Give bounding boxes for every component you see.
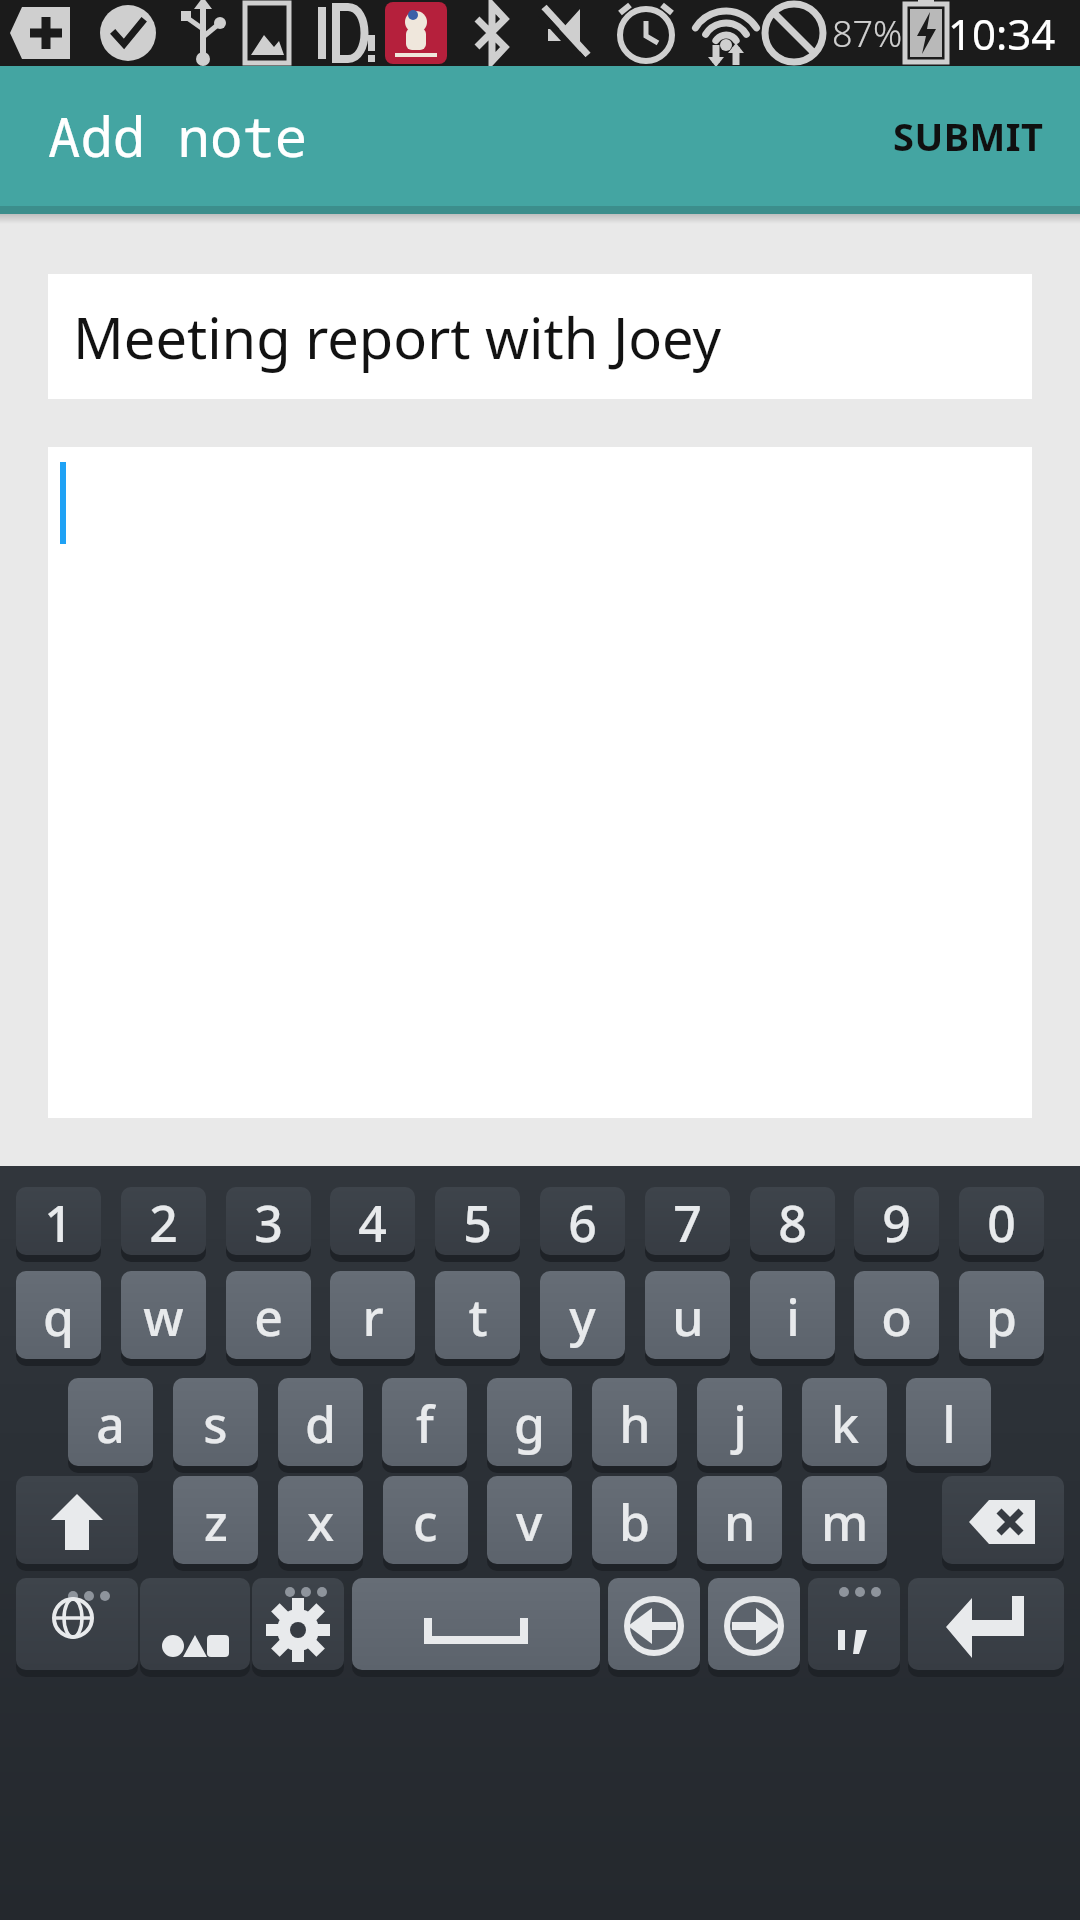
staticText: c (413, 1488, 438, 1556)
button[interactable]: l (906, 1378, 991, 1470)
button[interactable]: d (278, 1378, 363, 1470)
staticText: 6 (568, 1189, 597, 1257)
staticText: 4 (358, 1189, 387, 1257)
button[interactable]: t (435, 1271, 520, 1363)
button[interactable]: Shift (16, 1476, 138, 1568)
button[interactable]: j (697, 1378, 782, 1470)
staticText: w (143, 1283, 184, 1351)
button[interactable]: c (383, 1476, 468, 1568)
button[interactable]: 2 (121, 1187, 206, 1259)
staticText: i (786, 1283, 800, 1351)
staticText: b (619, 1488, 650, 1556)
staticText: r (362, 1283, 384, 1351)
button[interactable]: Meeting report with Joey (48, 274, 1032, 399)
staticText: o (881, 1283, 912, 1351)
staticText: s (203, 1390, 228, 1458)
staticText: n (724, 1488, 756, 1556)
button[interactable]: Keyboard settings (252, 1578, 344, 1674)
button[interactable]: h (592, 1378, 677, 1470)
button[interactable]: y (540, 1271, 625, 1363)
button[interactable]: s (173, 1378, 258, 1470)
staticText: 0 (987, 1189, 1016, 1257)
staticText: f (416, 1390, 434, 1458)
button[interactable]: Punctuation (808, 1578, 900, 1674)
button[interactable]: k (802, 1378, 887, 1470)
button[interactable]: w (121, 1271, 206, 1363)
button[interactable]: 0 (959, 1187, 1044, 1259)
button[interactable]: r (330, 1271, 415, 1363)
staticText: Meeting report with Joey (73, 299, 722, 375)
button[interactable]: Numbers and symbols (140, 1578, 250, 1674)
staticText: j (733, 1390, 747, 1458)
button[interactable]: p (959, 1271, 1044, 1363)
button[interactable]: Move cursor left (608, 1578, 700, 1674)
button[interactable]: Enter (908, 1578, 1064, 1674)
staticText: a (96, 1390, 125, 1458)
staticText: 87% (832, 9, 903, 58)
staticText: 9 (882, 1189, 911, 1257)
button[interactable]: Backspace (942, 1476, 1064, 1568)
button[interactable]: e (226, 1271, 311, 1363)
staticText: Add note (48, 99, 308, 173)
staticText: 10:34 (948, 5, 1056, 62)
button[interactable]: Move cursor right (708, 1578, 800, 1674)
staticText: k (831, 1390, 859, 1458)
staticText: 2 (149, 1189, 178, 1257)
button[interactable]: f (382, 1378, 467, 1470)
staticText: e (254, 1283, 283, 1351)
button[interactable]: 8 (750, 1187, 835, 1259)
button[interactable]: q (16, 1271, 101, 1363)
staticText: d (305, 1390, 336, 1458)
button[interactable]: a (68, 1378, 153, 1470)
button[interactable]: b (592, 1476, 677, 1568)
staticText: q (43, 1283, 74, 1351)
button[interactable]: 1 (16, 1187, 101, 1259)
staticText: 5 (463, 1189, 492, 1257)
staticText: u (672, 1283, 704, 1351)
staticText: t (468, 1283, 488, 1351)
staticText: 3 (254, 1189, 283, 1257)
button[interactable]: 5 (435, 1187, 520, 1259)
staticText: v (516, 1488, 543, 1556)
button[interactable]: Switch language (16, 1578, 138, 1674)
button[interactable]: 4 (330, 1187, 415, 1259)
staticText: l (942, 1390, 956, 1458)
button[interactable]: 9 (854, 1187, 939, 1259)
button[interactable]: 6 (540, 1187, 625, 1259)
staticText: x (307, 1488, 335, 1556)
button[interactable]: i (750, 1271, 835, 1363)
staticText: y (569, 1283, 596, 1351)
staticText: 7 (673, 1189, 702, 1257)
staticText: z (204, 1488, 228, 1556)
staticText: h (619, 1390, 651, 1458)
staticText: SUBMIT (893, 110, 1044, 162)
button[interactable]: u (645, 1271, 730, 1363)
button[interactable]: 7 (645, 1187, 730, 1259)
staticText: m (821, 1488, 869, 1556)
button[interactable]: g (487, 1378, 572, 1470)
button[interactable] (48, 447, 1032, 1118)
button[interactable]: Space (352, 1578, 600, 1674)
button[interactable]: SUBMIT (857, 84, 1080, 188)
button[interactable]: o (854, 1271, 939, 1363)
button[interactable]: z (173, 1476, 258, 1568)
staticText: 1 (44, 1189, 73, 1257)
staticText: 8 (778, 1189, 807, 1257)
button[interactable]: m (802, 1476, 887, 1568)
button[interactable]: 3 (226, 1187, 311, 1259)
staticText: p (986, 1283, 1017, 1351)
staticText: g (514, 1390, 545, 1458)
button[interactable]: n (697, 1476, 782, 1568)
button[interactable]: v (487, 1476, 572, 1568)
button[interactable]: x (278, 1476, 363, 1568)
